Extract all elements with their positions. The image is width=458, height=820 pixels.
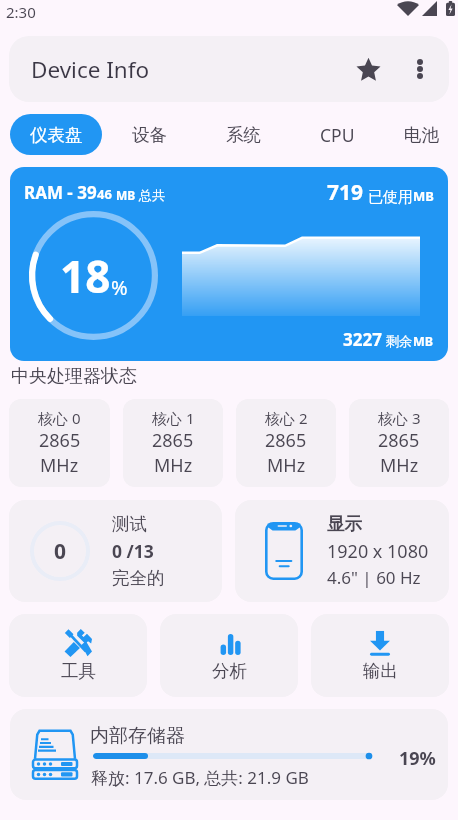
button[interactable]: CPU [290,114,384,155]
staticText: 工具 [61,660,96,682]
staticText: MB [413,187,434,205]
staticText: 核心 0 [38,408,81,428]
staticText: MHz [267,453,306,478]
staticText: 测试 [112,513,147,535]
button[interactable]: 核心 1 [123,399,223,487]
staticText: 0 /13 [112,539,154,563]
staticText: 2865 [39,428,81,453]
staticText: 分析 [212,660,247,682]
staticText: 仪表盘 [30,124,83,146]
staticText: MB [413,333,434,350]
staticText: 输出 [363,660,398,682]
staticText: CPU [320,123,355,147]
staticText: 系统 [226,124,261,146]
button[interactable]: More options [394,43,446,95]
staticText: 显示 [327,513,362,535]
staticText: 内部存储器 [90,724,185,748]
staticText: 2865 [152,428,194,453]
staticText: MHz [380,453,419,478]
button[interactable]: 电池 [384,114,458,155]
button[interactable]: RAM - 39 [10,167,448,361]
staticText: 2865 [265,428,307,453]
button[interactable]: 核心 0 [9,399,110,487]
staticText: 3227 [343,328,382,351]
staticText: 0 [54,537,67,566]
button[interactable]: 输出 [311,614,449,697]
button[interactable]: 内部存储器 [10,709,448,800]
staticText: 释放: 17.6 GB, 总共: 21.9 GB [91,766,309,789]
staticText: 已使用 [364,186,413,206]
staticText: 18 [60,246,111,306]
staticText: 4.6" | 60 Hz [327,566,421,589]
staticText: 完全的 [112,567,165,589]
staticText: 电池 [404,124,439,146]
staticText: Device Info [31,54,150,85]
button[interactable]: Favorite [342,43,394,95]
staticText: 核心 1 [152,408,195,428]
staticText: MHz [154,453,193,478]
staticText: 19% [399,746,436,771]
staticText: 2865 [378,428,420,453]
staticText: 核心 3 [378,408,421,428]
staticText: 总共 [139,187,165,203]
staticText: 2:30 [6,2,36,22]
button[interactable]: 核心 3 [349,399,449,487]
button[interactable]: 0 [9,500,222,602]
staticText: 46 [97,185,116,203]
button[interactable]: 设备 [102,114,196,155]
staticText: 剩余 [382,332,413,350]
staticText: 核心 2 [265,408,308,428]
button[interactable]: 系统 [196,114,290,155]
button[interactable]: 显示 [235,500,449,602]
staticText: 设备 [132,124,167,146]
button[interactable]: Device Info [9,36,449,102]
staticText: MB [116,187,139,203]
staticText: 1920 x 1080 [327,539,429,564]
button[interactable]: 分析 [160,614,298,697]
staticText: MHz [40,453,79,478]
staticText: 719 [327,178,364,207]
button[interactable]: 仪表盘 [10,114,102,155]
staticText: % [111,274,128,301]
button[interactable]: 核心 2 [236,399,336,487]
button[interactable]: 工具 [9,614,147,697]
staticText: 中央处理器状态 [11,365,137,388]
staticText: RAM - 39 [24,181,97,204]
